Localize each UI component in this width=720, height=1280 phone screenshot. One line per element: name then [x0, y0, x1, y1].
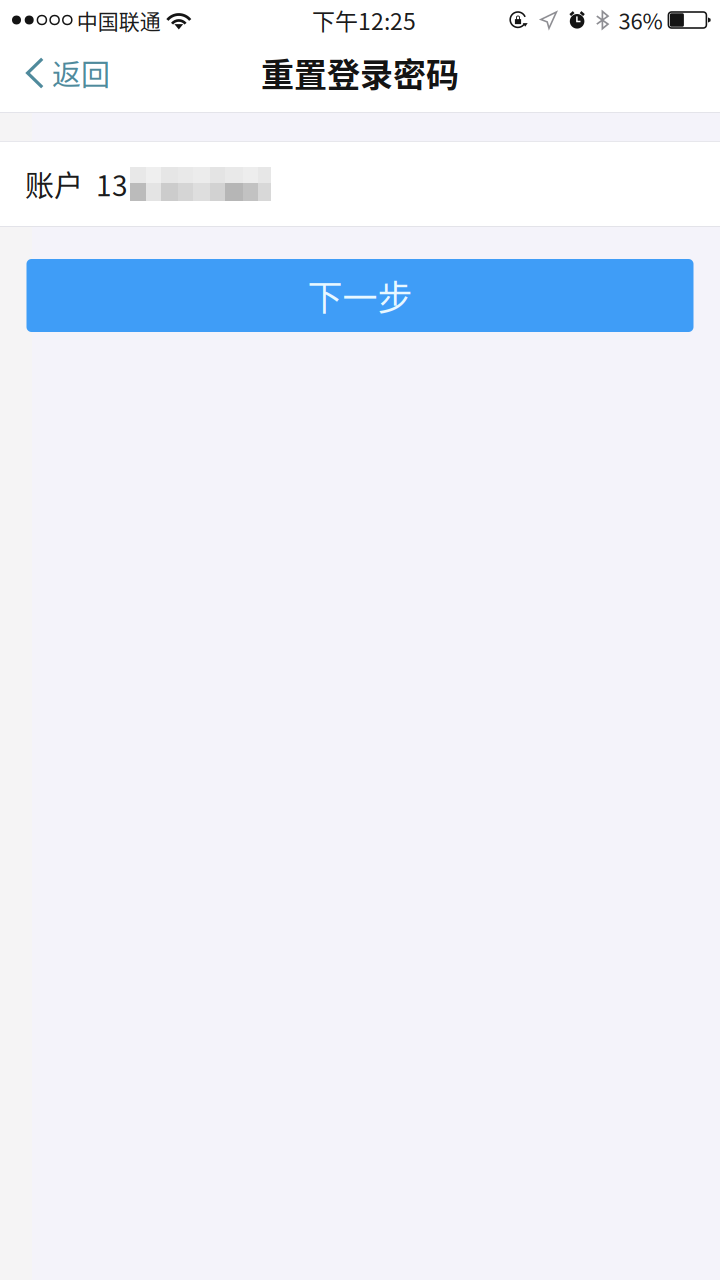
- staticText: 13: [96, 164, 128, 204]
- staticText: 下一步: [307, 270, 412, 321]
- staticText: 重置登录密码: [261, 49, 459, 96]
- staticText: 36%: [618, 4, 662, 36]
- staticText: 下午12:25: [312, 3, 416, 37]
- staticText: 中国联通: [77, 5, 161, 35]
- button[interactable]: 返回: [0, 40, 124, 113]
- button[interactable]: 下一步: [26, 259, 693, 332]
- staticText: 返回: [52, 52, 110, 94]
- staticText: 账户: [25, 163, 83, 205]
